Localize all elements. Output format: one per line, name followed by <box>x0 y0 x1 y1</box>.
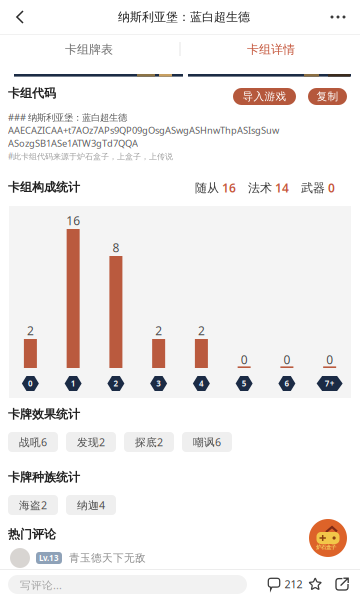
staticText: 2 <box>27 322 34 338</box>
staticText: ### 纳斯利亚堡：蓝白超生德 <box>8 111 127 123</box>
staticText: 写评论... <box>20 578 62 592</box>
button[interactable]: 卡组详情 <box>182 35 360 64</box>
staticText: 卡组牌表 <box>65 42 113 57</box>
staticText: 0 <box>28 378 33 389</box>
staticText: 复制 <box>316 90 338 103</box>
button[interactable]: 探底2 <box>124 432 174 452</box>
button[interactable]: 炉石盒子 <box>309 519 347 557</box>
staticText: 卡牌种族统计 <box>8 470 80 485</box>
staticText: ASozgSB1ASe1ATW3gTd7QQA <box>8 137 138 149</box>
staticText: 1 <box>71 378 76 389</box>
staticText: 卡组详情 <box>247 42 295 57</box>
staticText: 武器 <box>301 181 325 195</box>
staticText: 6 <box>284 378 289 389</box>
staticText: 卡牌效果统计 <box>8 407 80 422</box>
staticText: 卡组代码 <box>8 86 56 101</box>
staticText: 卡组构成统计 <box>8 180 80 195</box>
staticText: 0 <box>326 351 333 367</box>
button[interactable]: 嘲讽6 <box>182 432 232 452</box>
staticText: 纳斯利亚堡：蓝白超生德 <box>118 10 250 24</box>
staticText: 14 <box>275 180 289 196</box>
staticText: #此卡组代码来源于炉石盒子，上盒子，上传说 <box>8 151 173 162</box>
staticText: 2 <box>113 378 118 389</box>
staticText: 2 <box>155 322 162 338</box>
staticText: 212 <box>284 577 302 591</box>
staticText: 2 <box>198 322 205 338</box>
staticText: 3 <box>156 378 161 389</box>
button[interactable]: 收藏 <box>305 574 325 594</box>
staticText: 探底2 <box>135 435 163 449</box>
staticText: AAECAZICAA+t7AOz7APs9QP09gOsgASwgASHnwTh… <box>8 124 279 136</box>
staticText: 青玉德天下无敌 <box>69 551 146 564</box>
button[interactable]: 发现2 <box>66 432 116 452</box>
staticText: 16 <box>222 180 236 196</box>
staticText: 法术 <box>248 181 272 195</box>
staticText: 16 <box>66 212 80 228</box>
staticText: 0 <box>241 351 248 367</box>
button[interactable]: 分享 <box>332 574 352 594</box>
button[interactable]: 战吼6 <box>8 432 58 452</box>
staticText: 5 <box>242 378 247 389</box>
button[interactable]: 写评论... <box>8 575 247 594</box>
staticText: 海盗2 <box>19 498 47 512</box>
staticText: 4 <box>199 378 204 389</box>
button[interactable]: 评论 212 <box>264 574 306 594</box>
staticText: 战吼6 <box>19 435 47 449</box>
staticText: 随从 <box>195 181 219 195</box>
staticText: 嘲讽6 <box>193 435 221 449</box>
button[interactable]: 返回 <box>0 0 40 34</box>
staticText: 纳迦4 <box>77 498 105 512</box>
button[interactable]: 海盗2 <box>8 495 58 515</box>
staticText: Lv.13 <box>39 553 59 563</box>
staticText: 导入游戏 <box>242 90 286 103</box>
staticText: 0 <box>328 180 335 196</box>
staticText: 8 <box>112 239 119 255</box>
staticText: 0 <box>283 351 290 367</box>
button[interactable]: 纳迦4 <box>66 495 116 515</box>
button[interactable]: 复制 <box>308 88 347 105</box>
staticText: 炉石盒子 <box>316 544 336 551</box>
staticText: 发现2 <box>77 435 105 449</box>
button[interactable]: 卡组牌表 <box>0 35 178 64</box>
button[interactable]: 导入游戏 <box>233 88 296 105</box>
staticText: 热门评论 <box>8 527 56 542</box>
button[interactable]: 更多 <box>318 0 358 34</box>
staticText: 7+ <box>325 378 335 389</box>
